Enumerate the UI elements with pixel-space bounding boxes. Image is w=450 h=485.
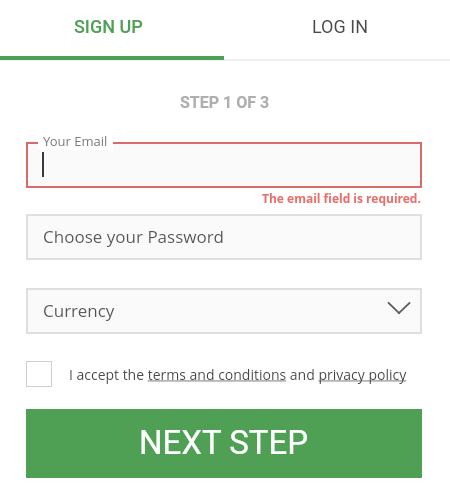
button[interactable]: NEXT STEP — [26, 409, 422, 478]
button[interactable]: SIGN UP — [0, 0, 225, 55]
button[interactable] — [26, 142, 422, 188]
staticText: NEXT STEP — [139, 423, 309, 462]
staticText: Currency — [43, 299, 115, 322]
staticText: LOG IN — [312, 16, 368, 37]
button[interactable]: Choose your Password — [26, 214, 422, 260]
staticText: SIGN UP — [74, 16, 143, 37]
button[interactable]: LOG IN — [225, 0, 450, 55]
button[interactable]: Currency — [26, 288, 422, 334]
button[interactable]: Accept terms and conditions checkbox — [26, 361, 52, 387]
other: Open currency dropdown — [388, 302, 410, 314]
staticText: I accept the terms and conditions and pr… — [69, 365, 407, 384]
button[interactable]: I accept the terms and conditions and pr… — [69, 365, 407, 384]
staticText: Your Email — [43, 132, 108, 150]
staticText: Choose your Password — [43, 225, 224, 248]
staticText: The email field is required. — [262, 190, 421, 206]
staticText: STEP 1 OF 3 — [180, 93, 270, 112]
